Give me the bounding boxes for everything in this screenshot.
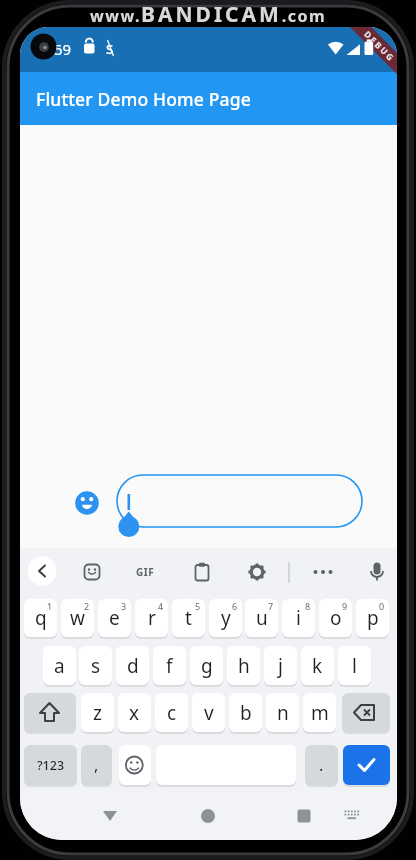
button[interactable] [362,557,392,587]
button[interactable]: . [305,745,338,785]
staticText: e [109,605,120,631]
button[interactable]: n [266,693,299,732]
staticText: GIF [136,565,155,579]
staticText: , [94,754,99,776]
staticText: n [277,700,289,726]
button[interactable] [27,557,57,587]
staticText: u [256,605,268,631]
staticText: p [367,605,379,631]
staticText: DEBUG [361,28,397,65]
button[interactable]: w [61,599,94,637]
staticText: 8 [305,600,311,612]
button[interactable]: p [356,599,389,637]
button[interactable] [187,557,217,587]
button[interactable]: r [135,599,168,637]
staticText: z [93,700,102,726]
button[interactable] [193,801,223,831]
button[interactable] [242,557,272,587]
staticText: m [311,700,329,726]
staticText: 4 [158,600,164,612]
button[interactable] [342,693,390,732]
button[interactable]: u [245,599,278,637]
button[interactable]: i [282,599,315,637]
button[interactable]: s [79,646,112,685]
button[interactable]: e [98,599,131,637]
staticText: ?123 [37,757,65,774]
staticText: S [106,40,114,58]
staticText: 1 [47,600,53,612]
button[interactable]: m [303,693,336,732]
button[interactable] [343,745,390,785]
button[interactable]: q [24,599,57,637]
staticText: 7 [268,600,274,612]
button[interactable] [289,801,319,831]
staticText: g [201,653,213,679]
button[interactable]: j [264,646,297,685]
button[interactable]: f [153,646,186,685]
staticText: 5 [195,600,201,612]
button[interactable]: z [81,693,114,732]
staticText: t [185,605,192,631]
staticText: 6 [232,600,238,612]
button[interactable]: c [155,693,188,732]
staticText: Flutter Demo Home Page [36,87,251,111]
staticText: i [296,605,301,631]
staticText: b [240,700,252,726]
staticText: 59 [54,39,72,57]
staticText: y [221,605,231,631]
button[interactable]: g [190,646,223,685]
staticText: w [70,605,85,631]
staticText: h [238,653,250,679]
button[interactable] [117,475,362,527]
staticText: r [148,605,156,631]
staticText: . [319,754,324,776]
button[interactable]: o [319,599,352,637]
button[interactable]: , [81,745,112,785]
staticText: v [204,700,214,726]
button[interactable]: k [301,646,334,685]
staticText: 0 [379,600,385,612]
button[interactable]: GIF [130,560,160,584]
staticText: www.BANDICAM.com [90,0,327,27]
button[interactable]: Flutter Demo Home Page [20,72,397,125]
staticText: l [352,653,357,679]
staticText: s [91,653,101,679]
button[interactable] [24,693,76,732]
staticText: c [167,700,177,726]
button[interactable]: v [192,693,225,732]
button[interactable] [119,745,151,785]
staticText: q [35,605,47,631]
button[interactable] [338,801,368,831]
staticText: j [278,653,283,679]
button[interactable] [77,557,107,587]
button[interactable]: b [229,693,262,732]
staticText: 2 [84,600,90,612]
staticText: f [166,653,173,679]
staticText: 3 [121,600,127,612]
button[interactable] [95,801,125,831]
staticText: x [129,700,140,726]
button[interactable]: a [43,646,76,685]
button[interactable]: t [172,599,205,637]
staticText: a [54,653,65,679]
button[interactable]: y [209,599,242,637]
button[interactable]: l [338,646,371,685]
staticText: k [312,653,323,679]
staticText: 9 [342,600,348,612]
button[interactable]: ?123 [24,745,77,785]
button[interactable]: x [118,693,151,732]
staticText: d [127,653,139,679]
button[interactable]: h [227,646,260,685]
button[interactable] [308,557,338,587]
button[interactable]: d [116,646,149,685]
staticText: o [330,605,342,631]
